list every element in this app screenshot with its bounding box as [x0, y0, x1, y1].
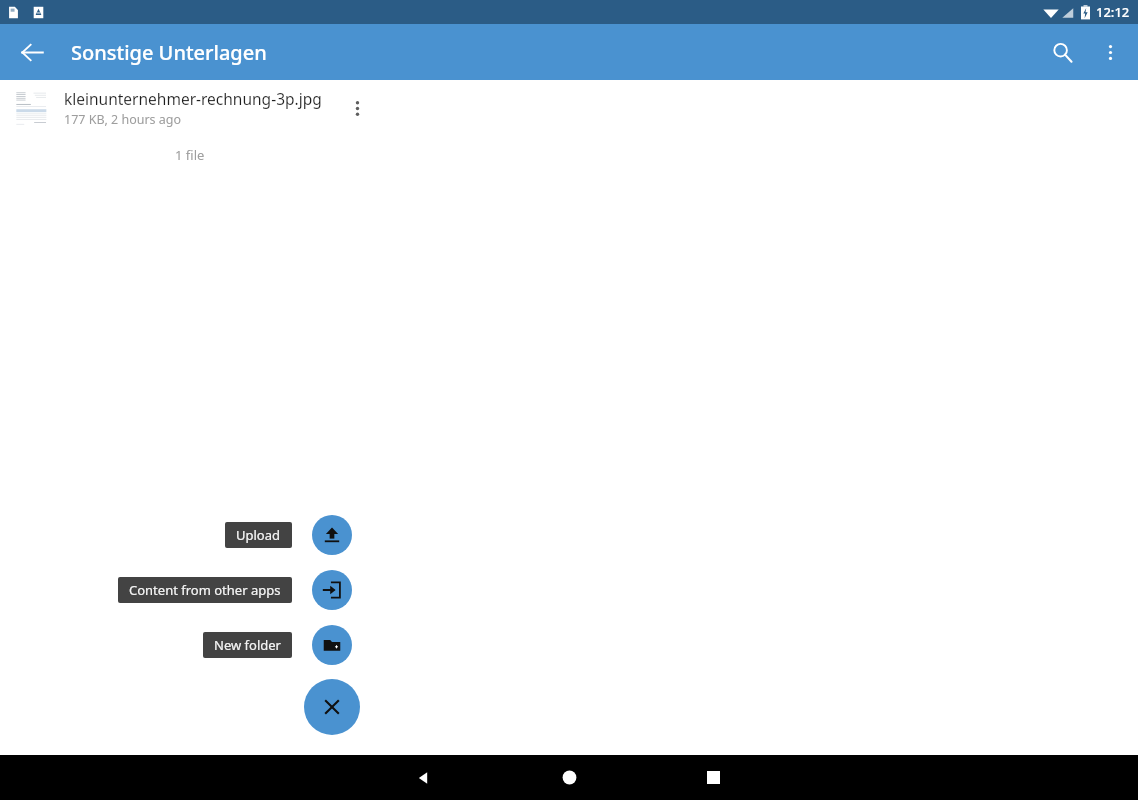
- button[interactable]: kleinunternehmer-rechnung-3p.jpg: [0, 80, 1138, 136]
- staticText: kleinunternehmer-rechnung-3p.jpg: [64, 88, 322, 109]
- button[interactable]: Upload: [312, 515, 352, 555]
- button[interactable]: Recent apps: [690, 755, 736, 800]
- staticText: Upload: [236, 526, 281, 544]
- staticText: Content from other apps: [129, 581, 281, 599]
- button[interactable]: Search: [1038, 28, 1086, 76]
- staticText: 177 KB, 2 hours ago: [64, 111, 182, 128]
- staticText: 1 file: [175, 146, 205, 164]
- button[interactable]: Content from other apps: [118, 577, 292, 603]
- button[interactable]: Content from other apps: [312, 570, 352, 610]
- button[interactable]: Home: [546, 755, 592, 800]
- staticText: 12:12: [1096, 3, 1130, 21]
- button[interactable]: Close menu: [304, 679, 360, 735]
- staticText: New folder: [214, 636, 281, 654]
- button[interactable]: Upload: [225, 522, 292, 548]
- button[interactable]: File options: [334, 85, 380, 131]
- staticText: Sonstige Unterlagen: [71, 39, 267, 66]
- button[interactable]: Back: [401, 755, 447, 800]
- button[interactable]: New folder: [203, 632, 292, 658]
- button[interactable]: More options: [1086, 28, 1134, 76]
- button[interactable]: Navigate up: [9, 29, 55, 75]
- button[interactable]: New folder: [312, 625, 352, 665]
